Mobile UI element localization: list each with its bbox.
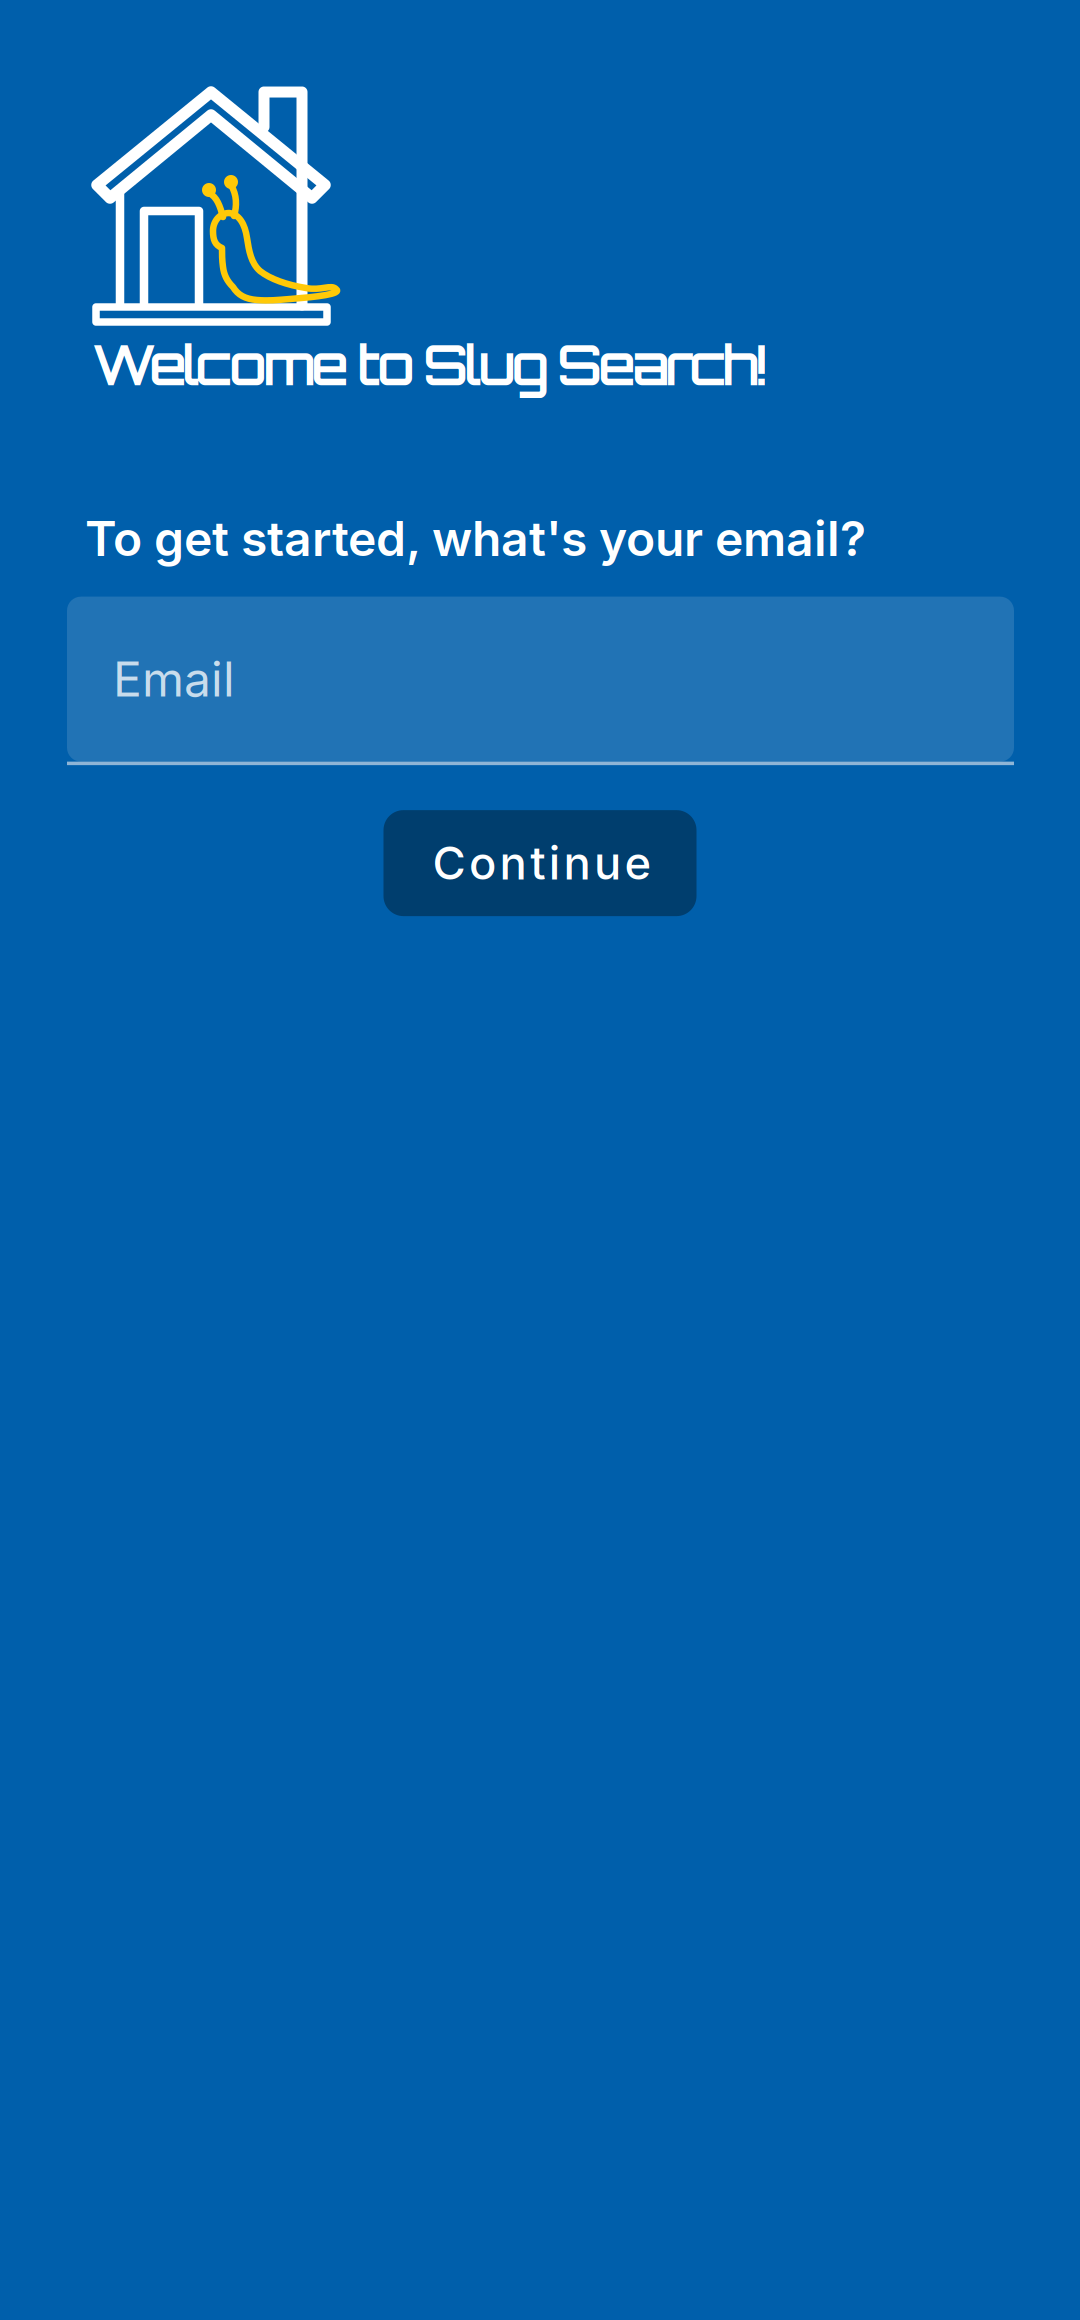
staticText: Welcome to Slug Search! — [92, 330, 767, 399]
button[interactable]: Email — [67, 597, 1014, 765]
button[interactable]: Continue — [383, 810, 696, 916]
staticText: Email — [113, 650, 235, 708]
staticText: Continue — [432, 836, 652, 891]
staticText: To get started, what's your email? — [85, 510, 866, 568]
